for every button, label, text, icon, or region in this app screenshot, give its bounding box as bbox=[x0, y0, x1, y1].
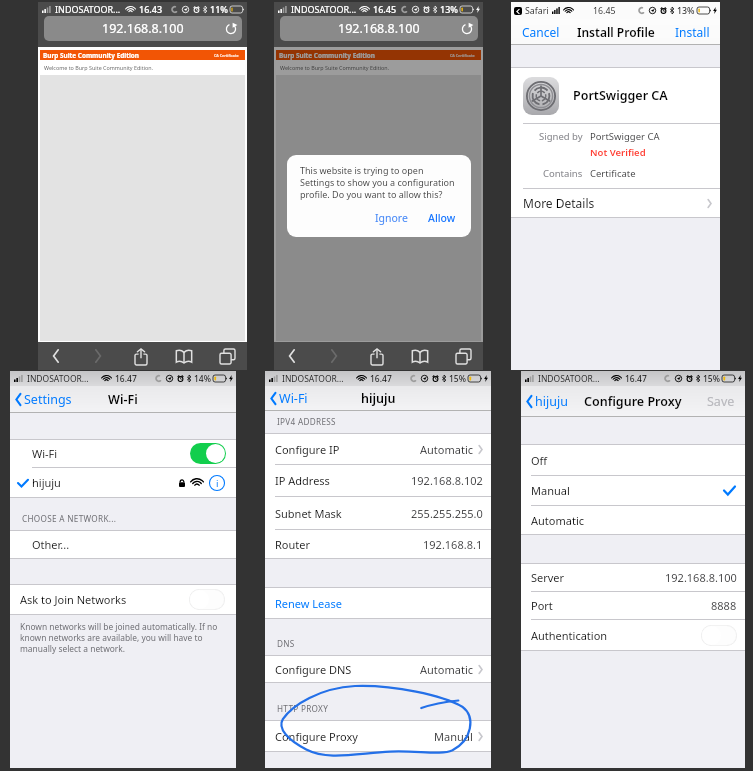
button[interactable]: Renew Lease bbox=[275, 588, 483, 618]
button[interactable]: Reload bbox=[460, 22, 473, 35]
button[interactable]: Back bbox=[279, 343, 305, 369]
staticText: 255.255.255.0 bbox=[411, 506, 483, 521]
staticText: 15% bbox=[703, 373, 720, 385]
staticText: INDOSATOOR... bbox=[538, 373, 600, 385]
staticText: CHOOSE A NETWORK... bbox=[22, 513, 117, 524]
staticText: INDOSATOOR... bbox=[282, 373, 344, 385]
staticText: Certificate bbox=[590, 167, 636, 180]
button[interactable]: CA Certificate bbox=[450, 53, 475, 58]
staticText: 192.168.8.100 bbox=[338, 20, 420, 37]
button[interactable] bbox=[701, 625, 737, 646]
button[interactable]: Tabs bbox=[450, 343, 476, 369]
button[interactable]: Network info bbox=[209, 475, 225, 491]
button[interactable]: Server bbox=[531, 564, 737, 591]
staticText: Ask to Join Networks bbox=[20, 592, 127, 607]
staticText: INDOSATOOR... bbox=[27, 373, 89, 385]
staticText: 8888 bbox=[711, 598, 737, 613]
button[interactable]: Reload bbox=[224, 22, 237, 35]
staticText: Save bbox=[707, 393, 735, 410]
staticText: Configure Proxy bbox=[584, 393, 682, 410]
button[interactable]: Wi-Fi bbox=[270, 386, 308, 410]
staticText: 16.43 bbox=[139, 3, 163, 15]
button[interactable]: Ignore bbox=[375, 211, 408, 225]
button[interactable]: Forward bbox=[85, 343, 111, 369]
button[interactable]: PortSwigger CA bbox=[523, 68, 720, 123]
button[interactable]: Configure IP bbox=[275, 434, 483, 464]
staticText: INDOSATOOR... bbox=[291, 3, 357, 15]
button[interactable]: CA Certificate bbox=[214, 53, 239, 58]
button[interactable]: Bookmarks bbox=[407, 343, 433, 369]
staticText: Ignore bbox=[375, 211, 408, 225]
button[interactable]: hijuju bbox=[526, 386, 568, 416]
button[interactable]: Wi-Fi bbox=[32, 440, 228, 467]
button[interactable]: Forward bbox=[321, 343, 347, 369]
button[interactable]: Cancel bbox=[522, 19, 560, 44]
staticText: Renew Lease bbox=[275, 596, 342, 611]
button[interactable]: Other... bbox=[32, 531, 228, 558]
button[interactable]: Configure Proxy bbox=[275, 721, 483, 751]
button[interactable]: Back to Safari bbox=[514, 7, 522, 15]
button[interactable]: Configure DNS bbox=[275, 656, 483, 682]
button[interactable]: Manual bbox=[531, 476, 735, 505]
staticText: Other... bbox=[32, 537, 70, 552]
staticText: Manual bbox=[434, 729, 473, 744]
staticText: Automatic bbox=[420, 442, 473, 457]
staticText: i bbox=[216, 477, 219, 490]
button[interactable]: Share bbox=[364, 343, 390, 369]
staticText: Port bbox=[531, 598, 553, 613]
staticText: This website is trying to open Settings … bbox=[300, 164, 455, 200]
staticText: 16.47 bbox=[370, 373, 392, 385]
staticText: 192.168.8.102 bbox=[411, 473, 483, 488]
staticText: 16.45 bbox=[593, 5, 616, 17]
button[interactable]: Off bbox=[531, 445, 737, 475]
staticText: 15% bbox=[449, 373, 466, 385]
staticText: 192.168.8.1 bbox=[423, 537, 483, 552]
button[interactable]: More Details bbox=[523, 189, 712, 217]
button[interactable]: Tabs bbox=[214, 343, 240, 369]
staticText: Subnet Mask bbox=[275, 506, 342, 521]
staticText: Burp Suite Community Edition bbox=[43, 51, 140, 60]
button[interactable]: Subnet Mask bbox=[275, 497, 483, 529]
staticText: 13% bbox=[677, 5, 695, 17]
staticText: Cancel bbox=[522, 24, 560, 40]
staticText: 16.47 bbox=[115, 373, 137, 385]
staticText: Manual bbox=[531, 483, 570, 498]
button[interactable]: 192.168.8.100 bbox=[44, 16, 242, 41]
staticText: Contains bbox=[543, 167, 583, 180]
button[interactable]: Install bbox=[675, 19, 710, 44]
staticText: hijuju bbox=[361, 390, 396, 407]
button[interactable] bbox=[189, 589, 225, 610]
button[interactable]: Router bbox=[275, 530, 483, 558]
button[interactable]: Share bbox=[128, 343, 154, 369]
button[interactable]: Authentication bbox=[531, 620, 737, 650]
staticText: Welcome to Burp Suite Community Edition. bbox=[280, 64, 390, 71]
staticText: IP Address bbox=[275, 473, 330, 488]
staticText: Install bbox=[675, 24, 710, 40]
staticText: 192.168.8.100 bbox=[102, 20, 184, 37]
staticText: 16.45 bbox=[373, 3, 397, 15]
staticText: 192.168.8.100 bbox=[665, 570, 737, 585]
staticText: Burp Suite Community Edition bbox=[279, 51, 376, 60]
button[interactable]: Settings bbox=[15, 386, 72, 412]
button[interactable]: Automatic bbox=[531, 506, 737, 534]
staticText: 13% bbox=[440, 3, 458, 15]
staticText: 16.47 bbox=[625, 373, 647, 385]
staticText: hijuju bbox=[535, 393, 568, 410]
staticText: PortSwigger CA bbox=[573, 87, 668, 104]
staticText: Server bbox=[531, 570, 565, 585]
button[interactable]: Back bbox=[43, 343, 69, 369]
button[interactable]: Save bbox=[707, 386, 735, 416]
staticText: DNS bbox=[277, 638, 295, 649]
staticText: hijuju bbox=[32, 475, 61, 490]
button[interactable]: Ask to Join Networks bbox=[20, 585, 228, 614]
button[interactable]: Port bbox=[531, 592, 737, 619]
button[interactable]: Bookmarks bbox=[171, 343, 197, 369]
button[interactable] bbox=[190, 443, 226, 464]
button[interactable]: IP Address bbox=[275, 465, 483, 496]
staticText: Automatic bbox=[420, 662, 473, 677]
staticText: Configure IP bbox=[275, 442, 340, 457]
button[interactable]: Allow bbox=[428, 211, 456, 225]
button[interactable]: 192.168.8.100 bbox=[280, 16, 478, 41]
staticText: Off bbox=[531, 453, 548, 468]
button[interactable]: hijuju bbox=[18, 468, 225, 497]
